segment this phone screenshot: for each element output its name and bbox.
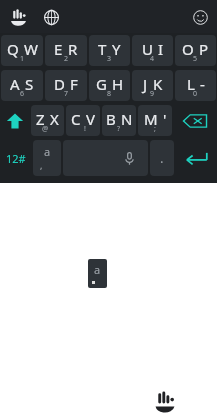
button[interactable]: Accessibility cursor <box>153 390 177 414</box>
button[interactable]: L <box>175 70 216 101</box>
staticText: V <box>86 109 96 129</box>
staticText: 5 <box>193 54 198 64</box>
button[interactable]: Enter <box>175 138 217 178</box>
staticText: a <box>94 262 101 277</box>
staticText: B <box>106 109 116 129</box>
button[interactable]: Backspace <box>173 103 217 138</box>
button[interactable]: Input method <box>5 4 31 30</box>
staticText: W <box>24 39 38 59</box>
button[interactable]: Change language <box>38 4 64 30</box>
staticText: 0 <box>193 89 198 99</box>
staticText: S <box>25 74 34 94</box>
button[interactable]: Z <box>31 105 64 136</box>
staticText: 8 <box>107 89 112 99</box>
button[interactable]: C <box>66 105 100 136</box>
staticText: L <box>187 74 195 94</box>
button[interactable]: G <box>89 70 130 101</box>
staticText: 2 <box>64 54 69 64</box>
staticText: I <box>158 39 164 59</box>
button[interactable]: Shift <box>0 103 30 138</box>
staticText: G <box>96 74 107 94</box>
staticText: A <box>10 74 20 94</box>
staticText: 6 <box>20 89 25 99</box>
staticText: 9 <box>150 89 155 99</box>
staticText: F <box>70 74 78 94</box>
button[interactable]: . <box>150 140 174 176</box>
staticText: M <box>144 109 158 129</box>
staticText: E <box>54 39 63 59</box>
staticText: J <box>143 74 148 94</box>
staticText: 3 <box>107 54 112 64</box>
staticText: D <box>54 74 65 94</box>
staticText: N <box>121 109 133 129</box>
button[interactable]: A <box>1 70 43 101</box>
staticText: H <box>112 74 124 94</box>
staticText: P <box>199 39 209 59</box>
button[interactable]: Symbols <box>33 140 61 176</box>
staticText: C <box>71 109 81 129</box>
staticText: ! <box>84 124 86 134</box>
staticText: 12# <box>6 151 26 166</box>
button[interactable]: U <box>132 35 173 66</box>
button[interactable]: T <box>89 35 130 66</box>
button[interactable]: 12# <box>0 138 32 178</box>
staticText: 1 <box>20 54 25 64</box>
button[interactable]: E <box>45 35 87 66</box>
button[interactable]: Space <box>63 140 148 176</box>
staticText: , <box>40 159 43 171</box>
button[interactable]: O <box>175 35 216 66</box>
staticText: - <box>200 74 205 94</box>
staticText: U <box>142 39 153 59</box>
button[interactable]: Emoji <box>187 4 213 30</box>
staticText: Y <box>112 39 121 59</box>
button[interactable]: Key preview <box>88 259 107 288</box>
button[interactable]: B <box>102 105 136 136</box>
staticText: ; <box>154 124 156 134</box>
button[interactable]: J <box>132 70 173 101</box>
staticText: R <box>68 39 78 59</box>
staticText: X <box>50 109 59 129</box>
staticText: a <box>44 144 51 159</box>
button[interactable]: M <box>138 105 172 136</box>
staticText: T <box>98 39 107 59</box>
staticText: O <box>182 39 194 59</box>
staticText: 7 <box>64 89 69 99</box>
button[interactable]: Q <box>1 35 43 66</box>
staticText: ? <box>117 124 121 134</box>
staticText: . <box>160 149 164 167</box>
staticText: ' <box>163 109 167 129</box>
staticText: @ <box>42 124 49 134</box>
staticText: Z <box>36 109 45 129</box>
staticText: K <box>153 74 163 94</box>
staticText: 4 <box>150 54 155 64</box>
staticText: Q <box>7 39 19 59</box>
button[interactable]: D <box>45 70 87 101</box>
